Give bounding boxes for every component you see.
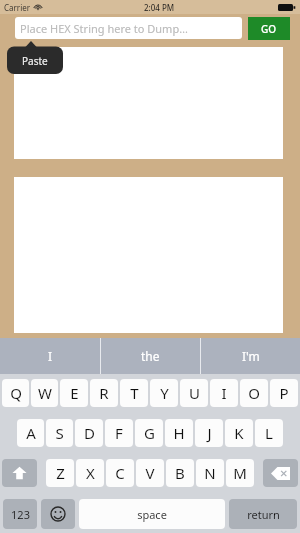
staticText: O	[248, 383, 260, 403]
button[interactable]: H	[165, 419, 193, 447]
staticText: K	[234, 423, 244, 443]
button[interactable]: A	[17, 419, 44, 447]
button[interactable]: X	[76, 459, 104, 487]
staticText: X	[86, 463, 95, 483]
button[interactable]: 123	[3, 499, 37, 529]
button[interactable]: S	[46, 419, 73, 447]
button[interactable]: E	[60, 379, 88, 407]
staticText: C	[115, 463, 125, 483]
staticText: V	[145, 463, 155, 483]
staticText: M	[233, 463, 247, 483]
button[interactable]: Shift	[2, 459, 37, 487]
staticText: Carrier	[4, 2, 31, 13]
staticText: L	[265, 423, 273, 443]
button[interactable]: N	[196, 459, 224, 487]
staticText: I'm	[242, 348, 260, 364]
staticText: Place HEX String here to Dump…	[20, 21, 188, 36]
button[interactable]: T	[120, 379, 148, 407]
staticText: the	[141, 348, 160, 364]
staticText: G	[144, 423, 155, 443]
staticText: F	[115, 423, 123, 443]
staticText: H	[173, 423, 185, 443]
button[interactable]: Z	[46, 459, 74, 487]
staticText: Z	[56, 463, 65, 483]
staticText: P	[279, 383, 289, 403]
staticText: T	[130, 383, 139, 403]
button[interactable]: R	[90, 379, 118, 407]
button[interactable]: Backspace	[263, 459, 298, 487]
button[interactable]: P	[270, 379, 298, 407]
staticText: R	[99, 383, 109, 403]
button[interactable]: K	[225, 419, 253, 447]
button[interactable]: W	[31, 379, 58, 407]
staticText: A	[26, 423, 36, 443]
button[interactable]: C	[106, 459, 134, 487]
button[interactable]: return	[229, 499, 297, 529]
staticText: space	[137, 507, 167, 522]
button[interactable]: Y	[150, 379, 178, 407]
staticText: U	[189, 383, 200, 403]
button[interactable]: Paste	[7, 47, 63, 74]
staticText: Paste	[22, 54, 48, 68]
button[interactable]: GO	[248, 17, 290, 40]
staticText: W	[38, 383, 52, 403]
button[interactable]: Place HEX String here to Dump…	[15, 17, 242, 39]
button[interactable]: M	[226, 459, 254, 487]
staticText: I	[48, 348, 53, 364]
button[interactable]: Q	[2, 379, 29, 407]
button[interactable]: U	[180, 379, 208, 407]
button[interactable]: J	[195, 419, 223, 447]
button[interactable]: space	[79, 499, 225, 529]
staticText: E	[70, 383, 79, 403]
staticText: Y	[160, 383, 169, 403]
staticText: 2:04 PM	[144, 2, 175, 13]
staticText: return	[247, 507, 280, 522]
staticText: J	[207, 423, 212, 443]
button[interactable]: I	[210, 379, 238, 407]
button[interactable]	[14, 47, 283, 159]
staticText: I	[221, 383, 227, 403]
button[interactable]: B	[166, 459, 194, 487]
staticText: N	[204, 463, 216, 483]
staticText: S	[55, 423, 64, 443]
button[interactable]: D	[75, 419, 103, 447]
staticText: GO	[261, 22, 277, 36]
button[interactable]: O	[240, 379, 268, 407]
button[interactable]: the	[101, 338, 200, 374]
button[interactable]: I	[0, 338, 100, 374]
staticText: 123	[11, 507, 30, 522]
staticText: D	[84, 423, 95, 443]
button[interactable]: L	[255, 419, 283, 447]
button[interactable]: G	[135, 419, 163, 447]
staticText: Q	[10, 383, 22, 403]
button[interactable]: V	[136, 459, 164, 487]
button[interactable]: Emoji keyboard	[41, 499, 75, 529]
button[interactable]: I'm	[201, 338, 300, 374]
button[interactable]: F	[105, 419, 133, 447]
staticText: B	[175, 463, 185, 483]
